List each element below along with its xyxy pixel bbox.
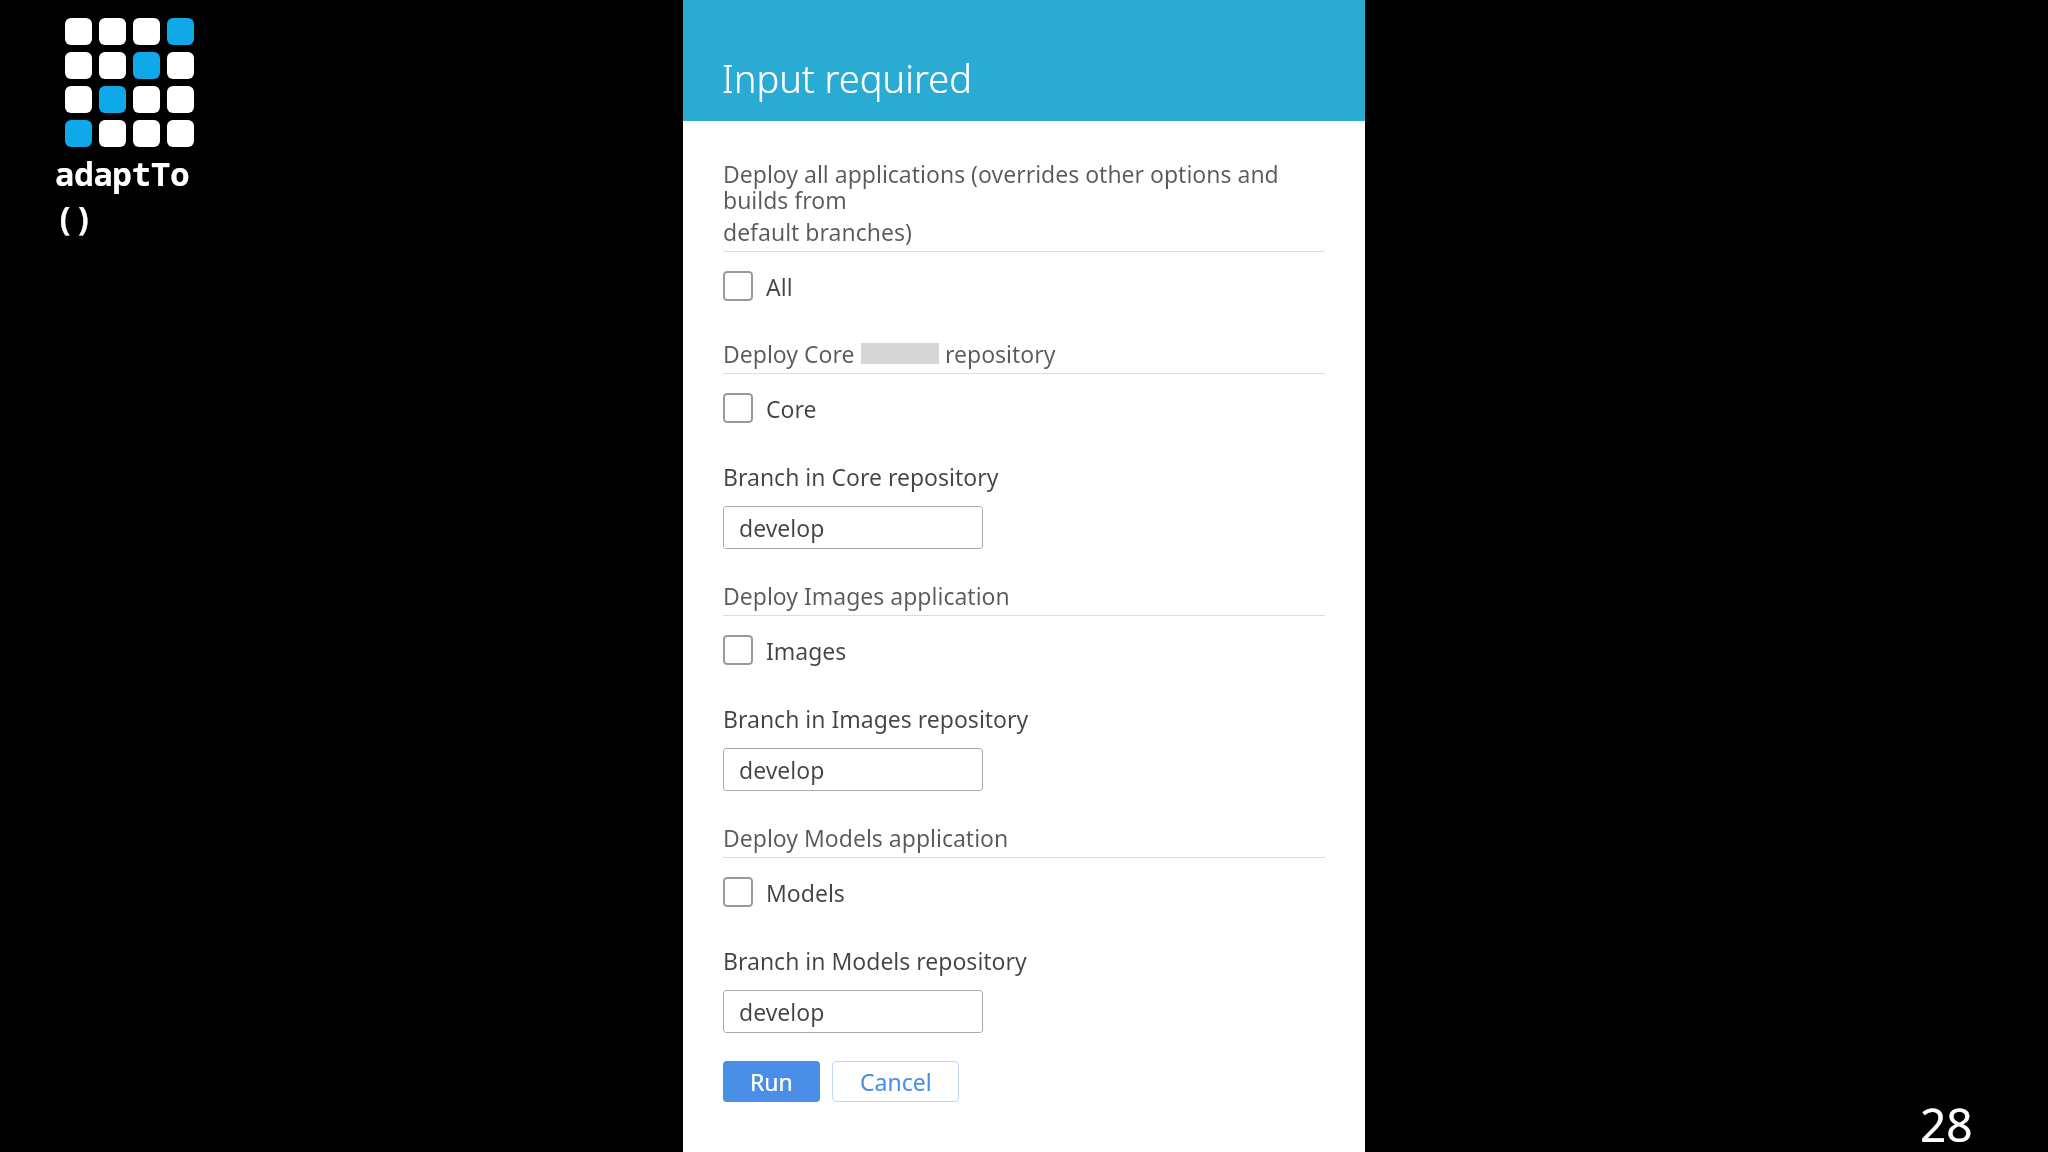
button[interactable]: Models <box>723 872 845 912</box>
staticText: default branches) <box>723 216 912 247</box>
button[interactable]: Cancel <box>832 1061 959 1102</box>
button[interactable]: All <box>723 266 793 306</box>
staticText: Cancel <box>860 1066 932 1097</box>
staticText: develop <box>739 996 825 1027</box>
staticText: Branch in Models repository <box>723 945 1027 976</box>
staticText: Core <box>766 393 817 424</box>
other: All <box>723 271 753 301</box>
button[interactable]: develop <box>723 748 983 791</box>
staticText: Input required <box>722 52 972 104</box>
staticText: Deploy Models application <box>723 822 1009 853</box>
other: Models <box>723 877 753 907</box>
staticText: Models <box>766 877 845 908</box>
button[interactable]: Core <box>723 388 817 428</box>
staticText: Images <box>766 635 847 666</box>
staticText: develop <box>739 512 825 543</box>
button[interactable]: develop <box>723 506 983 549</box>
staticText: Branch in Images repository <box>723 703 1029 734</box>
button[interactable]: Run <box>723 1061 820 1102</box>
staticText: Deploy all applications (overrides other… <box>723 158 1325 216</box>
staticText: Deploy Core <box>723 338 861 369</box>
staticText: All <box>766 271 793 302</box>
button[interactable]: Images <box>723 630 847 670</box>
other: Images <box>723 635 753 665</box>
staticText: 28 <box>1920 1093 1973 1152</box>
button[interactable]: develop <box>723 990 983 1033</box>
staticText: repository <box>939 338 1056 369</box>
staticText: Branch in Core repository <box>723 461 999 492</box>
staticText: Run <box>750 1066 793 1097</box>
staticText: develop <box>739 754 825 785</box>
staticText: adaptTo() <box>55 152 205 240</box>
staticText: Deploy Images application <box>723 580 1010 611</box>
other: Core <box>723 393 753 423</box>
